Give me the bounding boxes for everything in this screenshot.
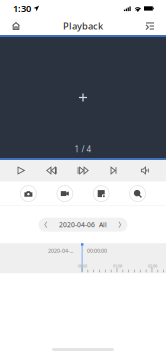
button[interactable]: Mute — [135, 162, 155, 178]
button[interactable]: Zoom — [130, 186, 146, 202]
staticText: 1 / 4 — [74, 144, 91, 154]
button[interactable]: Fast forward — [73, 162, 93, 178]
button[interactable]: Play — [11, 162, 31, 178]
button[interactable]: Snapshot — [20, 186, 36, 202]
button[interactable]: Record — [57, 186, 73, 202]
button[interactable]: 2020-04-06 All — [38, 218, 127, 232]
staticText: 02:00 — [148, 263, 157, 268]
staticText: 1:30 — [13, 2, 31, 15]
button[interactable]: Next frame — [104, 162, 124, 178]
staticText: 01:00 — [113, 263, 122, 268]
staticText: 2020-04-... — [48, 247, 73, 254]
button[interactable]: Rewind — [42, 162, 62, 178]
staticText: Playback — [63, 20, 103, 32]
staticText: 2020-04-06 All — [59, 220, 107, 229]
button[interactable]: Channel list — [139, 18, 161, 34]
staticText: 00:00 — [78, 263, 87, 268]
staticText: 00:00:00 — [87, 247, 107, 254]
button[interactable]: Clip — [93, 186, 109, 202]
button[interactable]: Home — [5, 18, 27, 34]
